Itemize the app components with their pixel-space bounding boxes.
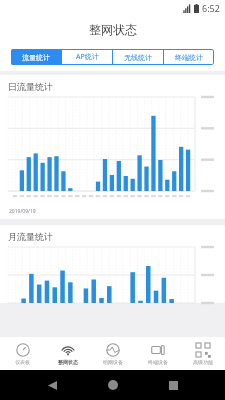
staticText: 组网设备: [103, 359, 123, 365]
button[interactable]: Back: [43, 376, 61, 394]
button[interactable]: 组网设备: [90, 337, 135, 370]
button[interactable]: AP统计: [62, 49, 112, 65]
staticText: 6:52: [202, 2, 220, 14]
button[interactable]: Home: [104, 376, 122, 394]
staticText: 月流量统计: [8, 231, 53, 242]
button[interactable]: 终端统计: [164, 49, 214, 65]
staticText: 仪表板: [15, 359, 30, 365]
staticText: AP统计: [76, 52, 99, 62]
button[interactable]: 终端设备: [135, 337, 180, 370]
button[interactable]: 无线统计: [113, 49, 163, 65]
button[interactable]: 流量统计: [11, 49, 61, 65]
staticText: 流量统计: [22, 53, 50, 62]
button[interactable]: 整网状态: [45, 337, 90, 370]
staticText: 终端设备: [148, 359, 168, 365]
button[interactable]: 仪表板: [0, 337, 45, 370]
staticText: 高级功能: [193, 359, 213, 365]
staticText: 终端统计: [175, 53, 203, 62]
staticText: 整网状态: [58, 359, 78, 365]
staticText: 无线统计: [124, 53, 152, 62]
button[interactable]: 高级功能: [180, 337, 225, 370]
staticText: 整网状态: [89, 22, 137, 37]
button[interactable]: Recents: [164, 376, 182, 394]
staticText: 2019/09/19: [9, 208, 36, 215]
staticText: 日流量统计: [8, 81, 53, 92]
